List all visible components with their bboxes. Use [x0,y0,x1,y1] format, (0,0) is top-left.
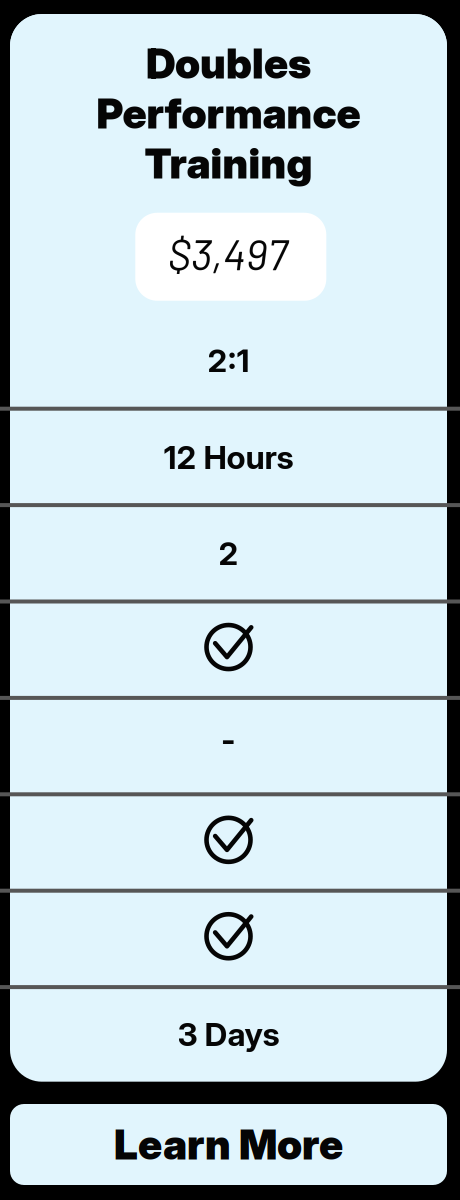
button[interactable]: Learn More [10,1104,447,1185]
staticText: Doubles [146,38,311,88]
staticText: Performance [96,88,360,138]
staticText: Training [144,138,312,188]
staticText: 2 [218,534,238,573]
staticText: 12 Hours [163,438,293,477]
staticText: Learn More [114,1119,343,1169]
staticText: $3,497 [168,228,288,279]
staticText: 2:1 [207,341,249,380]
staticText: - [221,720,236,759]
staticText: 3 Days [177,1015,279,1054]
